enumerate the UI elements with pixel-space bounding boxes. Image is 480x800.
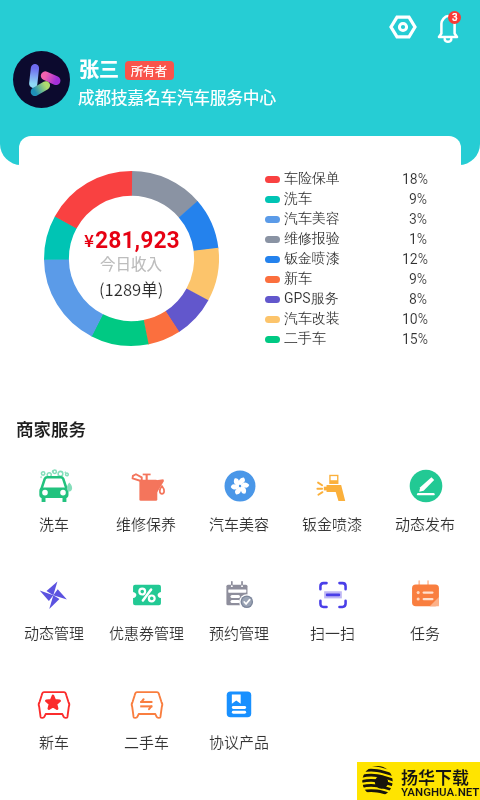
staticText: 今日收入 — [100, 252, 163, 274]
staticText: 维修报验 — [284, 230, 340, 248]
staticText: 新车 — [284, 270, 312, 288]
button[interactable]: 钣金喷漆 — [286, 469, 379, 535]
staticText: 扫一扫 — [310, 622, 356, 644]
button[interactable]: 汽车美容 — [265, 209, 428, 229]
staticText: 商家服务 — [16, 416, 86, 441]
staticText: 9% — [409, 191, 428, 207]
staticText: 10% — [402, 311, 428, 327]
staticText: 汽车美容 — [284, 210, 340, 228]
button[interactable]: 洗车 — [8, 469, 100, 535]
staticText: 15% — [402, 331, 428, 347]
staticText: GPS服务 — [284, 290, 339, 308]
staticText: 18% — [402, 171, 428, 187]
button[interactable]: 扫一扫 — [286, 578, 379, 644]
staticText: 12% — [402, 251, 428, 267]
button[interactable]: 新车 — [8, 687, 100, 753]
button[interactable]: 汽车美容 — [193, 469, 286, 535]
button[interactable]: 通知 — [426, 5, 470, 49]
button[interactable]: 动态管理 — [8, 578, 100, 644]
button[interactable]: 任务 — [379, 578, 472, 644]
staticText: (1289单) — [99, 277, 164, 301]
staticText: 动态管理 — [24, 622, 85, 644]
staticText: 维修保养 — [116, 513, 177, 535]
staticText: 汽车改装 — [284, 310, 340, 328]
staticText: 汽车美容 — [209, 513, 270, 535]
button[interactable]: 车险保单 — [265, 169, 428, 189]
staticText: 新车 — [39, 731, 70, 753]
button[interactable]: 洗车 — [265, 189, 428, 209]
staticText: 8% — [409, 291, 428, 307]
staticText: 二手车 — [284, 330, 326, 348]
button[interactable]: 新车 — [265, 269, 428, 289]
button[interactable]: 动态发布 — [379, 469, 472, 535]
button[interactable]: 二手车 — [100, 687, 193, 753]
staticText: 张三 — [79, 54, 119, 83]
staticText: 钣金喷漆 — [302, 513, 363, 535]
staticText: 预约管理 — [209, 622, 270, 644]
staticText: 3 — [452, 12, 458, 24]
staticText: 3% — [409, 211, 428, 227]
staticText: 所有者 — [131, 62, 168, 79]
staticText: 任务 — [410, 622, 441, 644]
staticText: 1% — [409, 231, 428, 247]
staticText: ¥ — [84, 227, 95, 252]
button[interactable]: GPS服务 — [265, 289, 428, 309]
staticText: 洗车 — [284, 190, 312, 208]
button[interactable]: 钣金喷漆 — [265, 249, 428, 269]
button[interactable]: 优惠券管理 — [100, 578, 193, 644]
staticText: 车险保单 — [284, 170, 340, 188]
staticText: YANGHUA.NET — [401, 785, 480, 798]
staticText: 钣金喷漆 — [284, 250, 340, 268]
button[interactable]: 维修报验 — [265, 229, 428, 249]
staticText: 扬华下载 — [401, 764, 469, 789]
button[interactable]: 协议产品 — [193, 687, 286, 753]
button[interactable]: 设置 — [381, 5, 425, 49]
staticText: 优惠券管理 — [109, 622, 185, 644]
staticText: 二手车 — [124, 731, 170, 753]
staticText: 协议产品 — [209, 731, 270, 753]
staticText: 281,923 — [95, 227, 180, 254]
button[interactable]: 维修保养 — [100, 469, 193, 535]
staticText: 成都技嘉名车汽车服务中心 — [78, 85, 276, 109]
button[interactable]: 汽车改装 — [265, 309, 428, 329]
staticText: 9% — [409, 271, 428, 287]
staticText: 洗车 — [39, 513, 70, 535]
button[interactable]: 二手车 — [265, 329, 428, 349]
staticText: 动态发布 — [395, 513, 456, 535]
button[interactable]: 预约管理 — [193, 578, 286, 644]
